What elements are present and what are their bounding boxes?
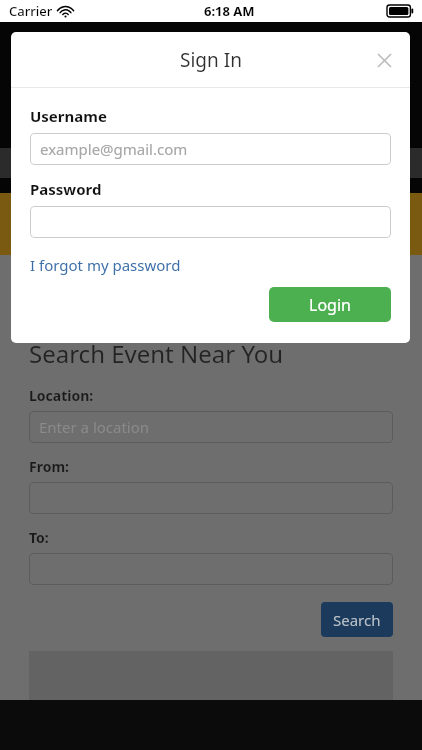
staticText: Username — [30, 106, 107, 126]
staticText: From: — [29, 457, 69, 476]
staticText: Search Event Near You — [29, 337, 284, 370]
button[interactable]: I forgot my password — [30, 255, 181, 275]
button[interactable] — [30, 206, 391, 238]
button[interactable]: Enter a location — [29, 411, 393, 443]
button[interactable]: Search — [321, 602, 393, 637]
button[interactable]: Login — [269, 287, 391, 322]
staticText: Carrier — [9, 2, 53, 20]
staticText: Sign In — [180, 47, 242, 73]
staticText: I forgot my password — [30, 255, 181, 275]
staticText: Login — [309, 294, 351, 316]
button[interactable] — [29, 482, 393, 514]
staticText: example@gmail.com — [40, 139, 188, 159]
staticText: Search — [333, 610, 381, 630]
button[interactable]: Close — [368, 44, 400, 76]
staticText: To: — [29, 528, 49, 547]
staticText: Enter a location — [39, 417, 150, 437]
button[interactable] — [29, 553, 393, 585]
staticText: Location: — [29, 386, 94, 405]
staticText: Password — [30, 179, 102, 199]
staticText: 6:18 AM — [204, 2, 255, 20]
button[interactable]: example@gmail.com — [30, 133, 391, 165]
